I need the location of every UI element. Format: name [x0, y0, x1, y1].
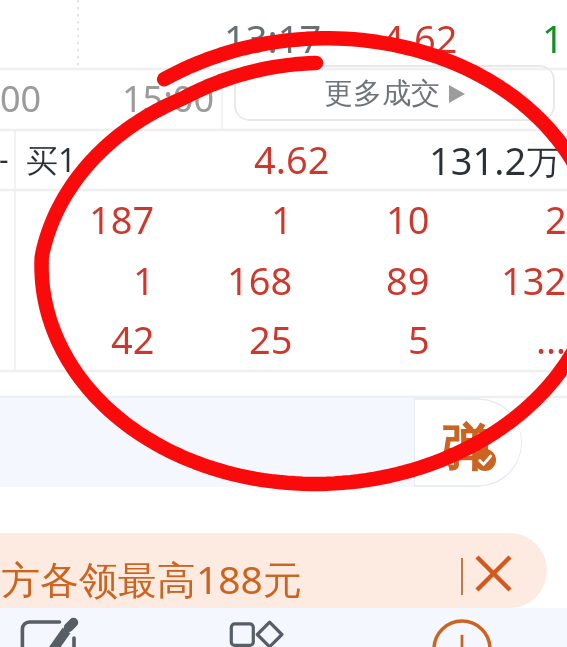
- staticText: 1: [542, 12, 564, 64]
- button[interactable]: Compose: [0, 608, 189, 647]
- staticText: 25: [249, 313, 293, 365]
- button[interactable]: 方各领最高188元: [0, 533, 547, 608]
- staticText: 买1: [26, 138, 77, 182]
- button[interactable]: 更多成交: [234, 65, 555, 121]
- staticText: 131.2: [429, 134, 527, 186]
- button[interactable]: Alerts: [378, 608, 567, 647]
- staticText: 89: [386, 254, 430, 306]
- button[interactable]: 弹: [414, 398, 522, 487]
- staticText: 方各领最高188元: [1, 552, 302, 605]
- staticText: 132: [501, 254, 567, 306]
- staticText: 4.62: [382, 12, 458, 64]
- staticText: 2: [545, 193, 567, 245]
- staticText: 万: [527, 141, 561, 184]
- staticText: 168: [227, 254, 293, 306]
- button[interactable]: Shapes: [189, 608, 378, 647]
- staticText: 42: [111, 313, 155, 365]
- staticText: 4.62: [254, 133, 330, 185]
- button[interactable]: Close: [475, 555, 512, 592]
- staticText: 弹: [442, 417, 492, 480]
- staticText: 5: [408, 313, 430, 365]
- staticText: -: [0, 138, 9, 179]
- staticText: 00: [0, 74, 40, 123]
- staticText: 1: [133, 254, 155, 306]
- staticText: 更多成交: [324, 75, 440, 112]
- staticText: 15:00: [122, 74, 215, 123]
- staticText: 1: [271, 193, 293, 245]
- staticText: 10: [386, 193, 430, 245]
- button[interactable]: [0, 398, 414, 487]
- staticText: 13:17: [224, 12, 322, 64]
- staticText: …: [536, 313, 567, 365]
- staticText: 187: [89, 193, 155, 245]
